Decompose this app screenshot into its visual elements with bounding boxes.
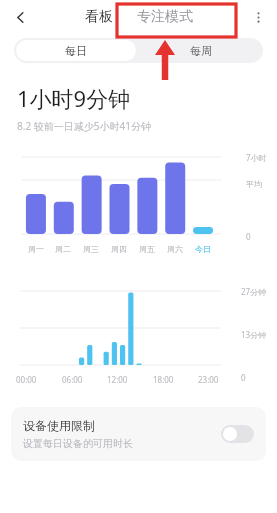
- staticText: 18:00: [153, 374, 174, 385]
- staticText: 23:00: [198, 374, 219, 385]
- staticText: 每周: [190, 44, 212, 58]
- staticText: 1小时9分钟: [17, 83, 131, 113]
- staticText: 每日: [65, 44, 87, 58]
- staticText: 06:00: [62, 374, 83, 385]
- staticText: 周五: [139, 244, 155, 254]
- staticText: 周六: [167, 244, 183, 254]
- staticText: 平均: [246, 179, 262, 189]
- button[interactable]: 设备使用限制: [11, 407, 266, 461]
- staticText: 12:00: [107, 374, 128, 385]
- button[interactable]: 每日: [16, 40, 136, 61]
- staticText: 27分钟: [241, 286, 267, 297]
- button[interactable]: 每周: [138, 38, 263, 63]
- staticText: 0: [246, 231, 251, 242]
- button[interactable]: 看板: [77, 3, 121, 31]
- staticText: 周四: [111, 244, 127, 254]
- staticText: 13分钟: [241, 329, 267, 340]
- button[interactable]: Device usage limit toggle: [221, 425, 254, 443]
- staticText: 周三: [83, 244, 99, 254]
- staticText: 7小时: [246, 152, 267, 163]
- staticText: 周二: [55, 244, 71, 254]
- staticText: 00:00: [16, 374, 37, 385]
- staticText: 周一: [28, 244, 44, 254]
- staticText: 今日: [195, 244, 211, 254]
- staticText: 专注模式: [137, 8, 193, 26]
- staticText: 设置每日设备的可用时长: [23, 437, 133, 450]
- button[interactable]: Back: [6, 3, 34, 31]
- button[interactable]: More options: [246, 5, 270, 29]
- staticText: 8.2 较前一日减少5小时41分钟: [17, 119, 151, 133]
- staticText: 设备使用限制: [23, 418, 95, 433]
- staticText: 0: [241, 372, 246, 383]
- button[interactable]: 专注模式: [129, 3, 201, 31]
- staticText: 看板: [85, 8, 113, 26]
